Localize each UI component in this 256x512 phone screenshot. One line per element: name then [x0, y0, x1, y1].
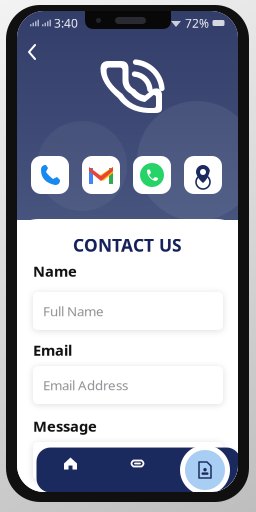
staticText: Name: [33, 261, 77, 281]
button[interactable]: New contact: [180, 445, 230, 495]
staticText: CONTACT US: [73, 233, 182, 256]
staticText: 3:40: [54, 15, 78, 31]
button[interactable]: Phone: [31, 156, 69, 194]
button[interactable]: Location: [184, 156, 222, 194]
staticText: Email: [33, 340, 72, 360]
staticText: Message: [33, 416, 97, 436]
staticText: Email Address: [43, 376, 128, 394]
staticText: 72%: [185, 15, 209, 31]
staticText: Full Name: [43, 302, 104, 320]
button[interactable]: Back: [25, 39, 51, 65]
button[interactable]: Email: [82, 156, 120, 194]
button[interactable]: Home: [57, 450, 83, 476]
button[interactable]: WhatsApp: [133, 156, 171, 194]
button[interactable]: Link: [124, 450, 150, 476]
